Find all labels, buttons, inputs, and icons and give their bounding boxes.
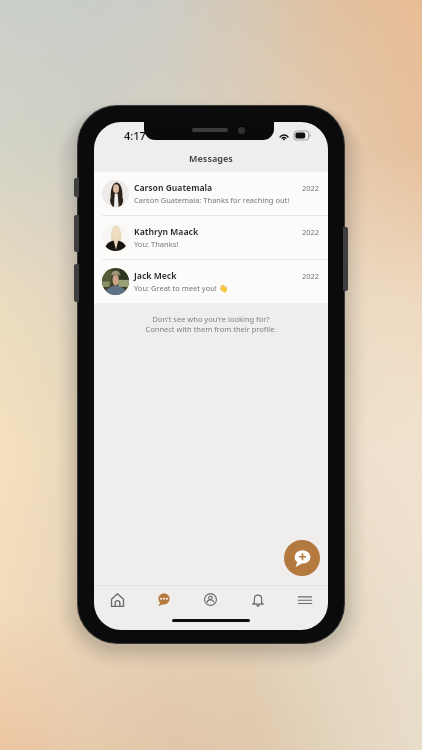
- button[interactable]: Carson Guatemala: [94, 172, 328, 215]
- button[interactable]: Menu: [281, 586, 328, 613]
- staticText: Don't see who you're looking for?: [152, 314, 270, 324]
- button[interactable]: Home: [94, 586, 140, 613]
- staticText: Carson Guatemala: [134, 182, 213, 194]
- staticText: Kathryn Maack: [134, 226, 199, 238]
- staticText: Messages: [189, 152, 233, 164]
- button[interactable]: Messages: [140, 586, 187, 613]
- staticText: You: Thanks!: [134, 239, 179, 249]
- button[interactable]: Jack Meck: [94, 260, 328, 303]
- staticText: 4:17: [124, 128, 146, 143]
- staticText: 2022: [302, 227, 320, 237]
- staticText: Jack Meck: [134, 270, 177, 282]
- staticText: You: Great to meet you! 👋: [134, 283, 229, 293]
- button[interactable]: Kathryn Maack: [94, 216, 328, 259]
- staticText: 2022: [302, 271, 320, 281]
- button[interactable]: Profile: [187, 586, 234, 613]
- staticText: Carson Guatemala: Thanks for reaching ou…: [134, 195, 290, 205]
- staticText: Connect with them from their profile.: [145, 324, 277, 334]
- staticText: 2022: [302, 183, 320, 193]
- button[interactable]: New message: [284, 540, 320, 576]
- button[interactable]: Notifications: [234, 586, 281, 613]
